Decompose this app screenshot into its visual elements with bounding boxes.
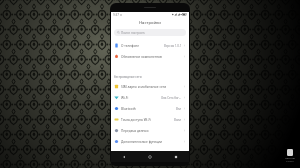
staticText: Ова Сеть баг... — [161, 96, 182, 100]
staticText: Support — [286, 160, 294, 163]
button[interactable]: Back — [111, 151, 137, 162]
staticText: SIM-карты и мобильные сети — [121, 85, 167, 89]
staticText: Вкл — [176, 107, 182, 111]
button[interactable]: Wi-Fi — [111, 92, 189, 103]
staticText: Настройки — [139, 20, 161, 26]
button[interactable]: Поиск настроек — [114, 29, 186, 36]
staticText: HELP ME — [285, 157, 295, 160]
button[interactable]: Bluetooth — [111, 103, 189, 114]
button[interactable]: О телефоне — [111, 40, 189, 51]
staticText: беспроводные сети — [114, 75, 142, 79]
staticText: Точка доступа Wi-Fi — [121, 118, 151, 122]
staticText: Bluetooth — [121, 107, 136, 111]
button[interactable]: Обновление компонентов — [111, 51, 189, 62]
staticText: Передача данных — [121, 129, 149, 133]
staticText: Выкл — [174, 118, 182, 122]
staticText: Wi-Fi — [121, 96, 129, 100]
staticText: Дополнительные функции — [121, 140, 163, 144]
button[interactable]: SIM-карты и мобильные сети — [111, 81, 189, 92]
button[interactable]: Recents — [163, 151, 189, 162]
button[interactable]: Точка доступа Wi-Fi — [111, 114, 189, 125]
staticText: 9:37 — [113, 13, 119, 17]
button[interactable]: Дополнительные функции — [111, 136, 189, 147]
button[interactable]: Передача данных — [111, 125, 189, 136]
staticText: Поиск настроек — [121, 31, 145, 35]
staticText: Обновление компонентов — [121, 55, 162, 59]
button[interactable]: Home — [137, 151, 163, 162]
staticText: Версия 1.0.1 — [164, 44, 182, 48]
staticText: О телефоне — [121, 44, 140, 48]
